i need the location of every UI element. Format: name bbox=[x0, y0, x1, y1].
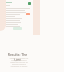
button[interactable]: Verified bbox=[28, 2, 31, 5]
button[interactable]: Label bbox=[26, 13, 30, 15]
staticText: Lorem ipsum dolor sit amet, consectetur … bbox=[9, 57, 29, 67]
staticText: Results: The Last bbox=[6, 52, 29, 62]
